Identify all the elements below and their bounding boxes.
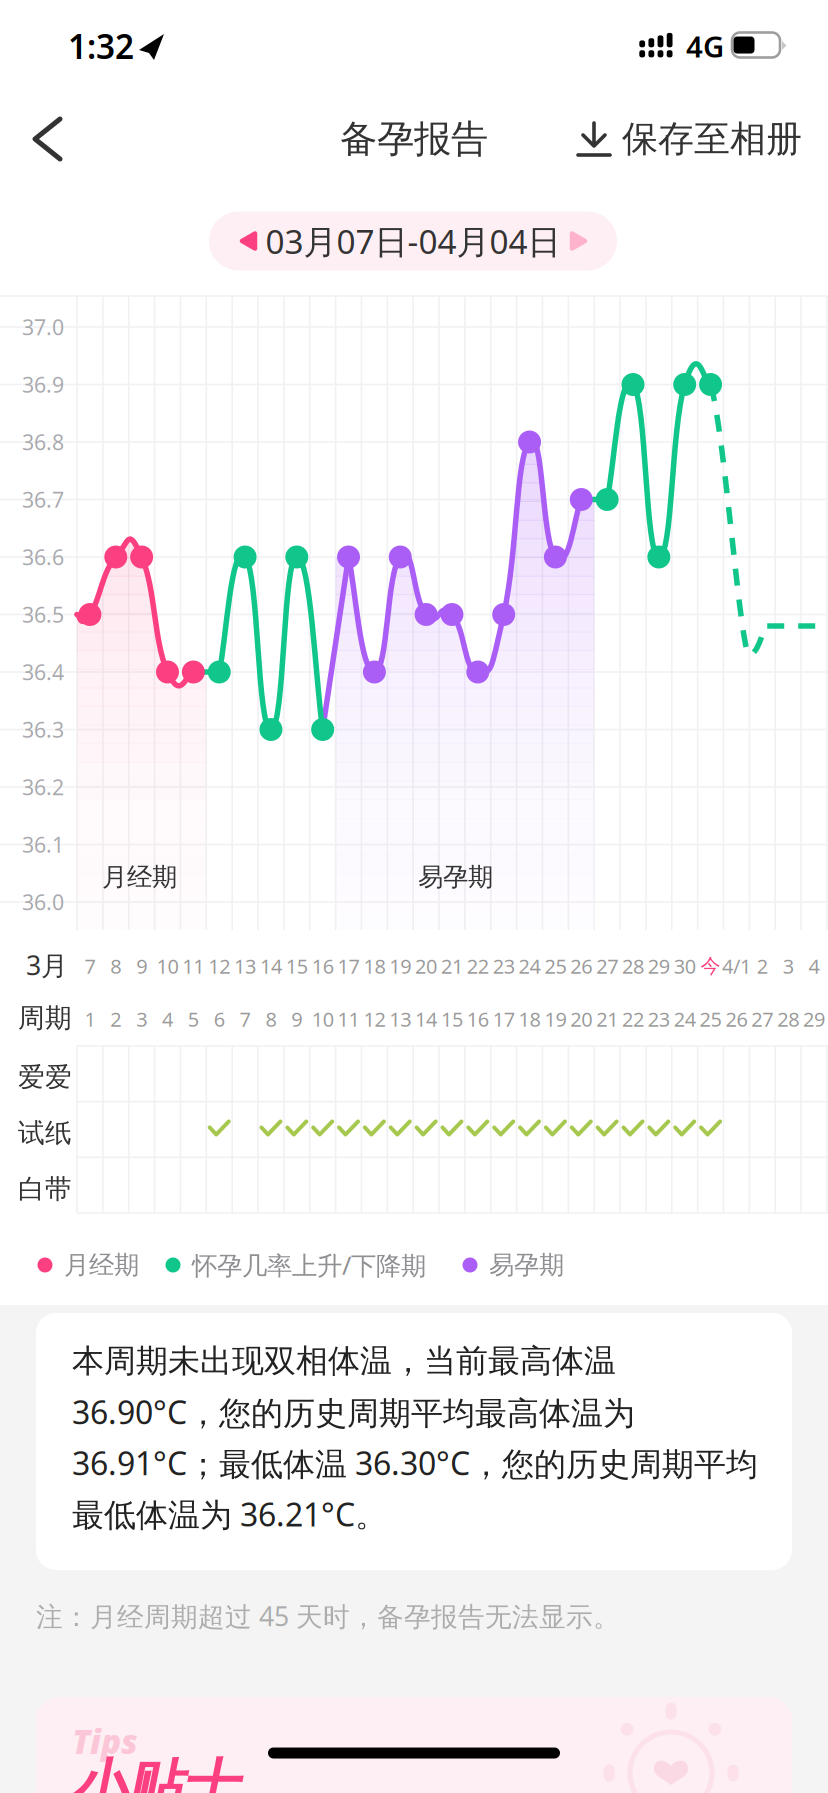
staticText: 9 [136,953,147,979]
staticText: 24 [674,1006,696,1032]
staticText: 9 [291,1006,302,1032]
staticText: 爱爱 [18,1061,72,1093]
staticText: 19 [389,953,411,979]
staticText: 22 [467,953,489,979]
staticText: 36.6 [22,543,64,571]
staticText: 13 [389,1006,411,1032]
button[interactable]: 保存至相册 [564,95,794,183]
staticText: 36.90°C，您的历史周期平均最高体温为 [72,1391,635,1433]
staticText: 13 [234,953,256,979]
staticText: 月经期 [64,1249,139,1280]
staticText: 最低体温为 36.21°C。 [72,1493,387,1535]
staticText: 28 [622,953,644,979]
staticText: 10 [156,953,178,979]
staticText: 8 [265,1006,276,1032]
staticText: 保存至相册 [622,117,802,161]
staticText: 03月07日-04月04日 [265,219,560,263]
staticText: 易孕期 [489,1249,564,1280]
staticText: 18 [518,1006,540,1032]
staticText: 12 [208,953,230,979]
staticText: 27 [751,1006,773,1032]
staticText: 20 [415,953,437,979]
staticText: 20 [570,1006,592,1032]
staticText: 小贴士 [70,1752,238,1793]
staticText: 36.9 [22,370,64,399]
staticText: 22 [622,1006,644,1032]
staticText: 11 [337,1006,359,1032]
staticText: 3 [783,953,794,979]
staticText: 18 [363,953,385,979]
staticText: 周期 [18,1002,72,1034]
staticText: 易孕期 [418,861,493,892]
staticText: 4G [686,26,724,65]
staticText: 今 [701,954,721,978]
staticText: 3月 [26,947,68,983]
staticText: 8 [110,953,121,979]
staticText: 4/1 [722,953,751,979]
staticText: 36.2 [22,773,64,801]
staticText: 4 [808,953,819,979]
staticText: 怀孕几率上升/下降期 [192,1248,426,1282]
staticText: 21 [596,1006,618,1032]
staticText: 36.1 [22,830,64,859]
staticText: 11 [182,953,204,979]
staticText: 本周期未出现双相体温，当前最高体温 [72,1341,616,1381]
staticText: 15 [286,953,308,979]
staticText: 7 [240,1006,251,1032]
staticText: 17 [493,1006,515,1032]
staticText: 36.8 [22,428,64,456]
staticText: 16 [312,953,334,979]
staticText: 白带 [18,1173,72,1205]
staticText: 16 [467,1006,489,1032]
staticText: 36.4 [22,658,64,686]
staticText: 注：月经周期超过 45 天时，备孕报告无法显示。 [36,1598,620,1634]
button[interactable]: 返回 [0,91,96,187]
staticText: 1 [84,1006,95,1032]
staticText: 17 [337,953,359,979]
staticText: 37.0 [22,313,64,341]
staticText: 25 [700,1006,722,1032]
staticText: 36.5 [22,600,64,629]
staticText: 36.91°C；最低体温 36.30°C，您的历史周期平均 [72,1442,758,1484]
staticText: 26 [725,1006,747,1032]
staticText: 12 [363,1006,385,1032]
staticText: 7 [84,953,95,979]
staticText: 2 [110,1006,121,1032]
staticText: 2 [757,953,768,979]
staticText: 23 [648,1006,670,1032]
staticText: 28 [777,1006,799,1032]
staticText: 试纸 [18,1117,72,1149]
staticText: 36.0 [22,888,64,916]
staticText: 4 [162,1006,173,1032]
staticText: 10 [312,1006,334,1032]
staticText: 23 [493,953,515,979]
staticText: 36.7 [22,485,64,514]
staticText: 3 [136,1006,147,1032]
staticText: 29 [648,953,670,979]
staticText: 1:32 [68,24,134,68]
staticText: 21 [441,953,463,979]
staticText: 备孕报告 [340,116,488,162]
staticText: 14 [415,1006,437,1032]
staticText: 29 [803,1006,825,1032]
staticText: 5 [188,1006,199,1032]
staticText: 26 [570,953,592,979]
staticText: 25 [544,953,566,979]
button[interactable]: 03月07日-04月04日 [209,211,617,270]
staticText: 27 [596,953,618,979]
staticText: 15 [441,1006,463,1032]
staticText: 30 [674,953,696,979]
staticText: 月经期 [102,861,177,892]
staticText: 6 [214,1006,225,1032]
staticText: 24 [518,953,540,979]
staticText: 14 [260,953,282,979]
staticText: 19 [544,1006,566,1032]
staticText: 36.3 [22,715,64,744]
staticText: Tips [72,1719,138,1763]
